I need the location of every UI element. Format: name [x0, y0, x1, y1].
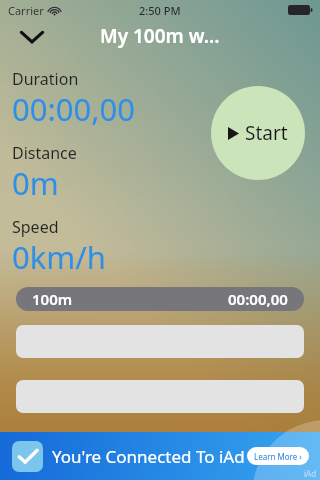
staticText: Start — [245, 120, 288, 146]
staticText: Speed — [12, 216, 59, 238]
staticText: 00:00,00 — [228, 289, 288, 309]
staticText: 100m — [32, 289, 73, 309]
button[interactable] — [16, 380, 304, 413]
button[interactable]: You're Connected To iAd — [0, 432, 320, 480]
staticText: Duration — [12, 68, 79, 90]
button[interactable]: Collapse — [14, 22, 50, 50]
staticText: You're Connected To iAd — [52, 445, 245, 468]
staticText: 2:50 PM — [139, 3, 181, 18]
button[interactable]: Start — [211, 86, 305, 180]
staticText: 0m — [12, 162, 59, 204]
button[interactable]: 100m — [16, 287, 304, 311]
button[interactable] — [16, 325, 304, 358]
staticText: iAd — [304, 468, 317, 479]
staticText: Learn More › — [254, 451, 302, 462]
staticText: 00:00,00 — [12, 88, 136, 130]
staticText: My 100m w… — [100, 23, 220, 49]
staticText: Carrier — [8, 3, 44, 18]
staticText: Distance — [12, 142, 77, 164]
staticText: 0km/h — [12, 236, 106, 278]
button[interactable]: Learn More › — [247, 447, 309, 465]
